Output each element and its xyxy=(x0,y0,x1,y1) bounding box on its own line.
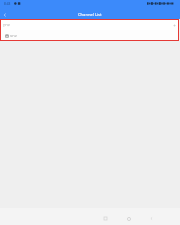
button[interactable]: Back xyxy=(0,10,10,20)
staticText: ערוץ xyxy=(3,23,10,27)
staticText: Channel List xyxy=(78,12,102,18)
button[interactable]: Home xyxy=(122,212,135,225)
button[interactable]: Recent apps xyxy=(99,212,112,225)
staticText: ערוצ xyxy=(10,34,17,38)
button[interactable]: ערוצ xyxy=(5,30,179,41)
button[interactable]: Clear xyxy=(171,22,177,28)
staticText: 8:43 xyxy=(4,2,11,6)
button[interactable]: ערוץ xyxy=(0,19,179,41)
